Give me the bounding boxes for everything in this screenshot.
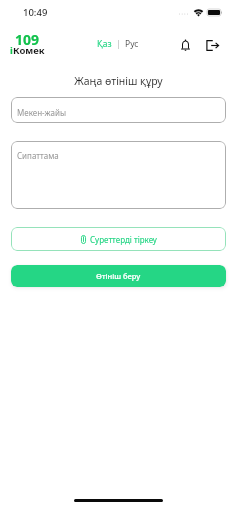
staticText: Мекен-жайы <box>17 107 66 118</box>
staticText: Өтініш беру <box>96 271 141 281</box>
button[interactable]: Өтініш беру <box>11 265 226 287</box>
staticText: Суреттерді тіркеу <box>90 234 157 245</box>
staticText: Рус <box>125 38 139 50</box>
staticText: 10:49 <box>23 6 48 19</box>
button[interactable]: Суреттерді тіркеу <box>11 227 226 251</box>
button[interactable]: Мекен-жайы <box>11 97 226 123</box>
button[interactable]: Log out <box>205 39 219 51</box>
staticText: Сипаттама <box>17 150 59 161</box>
button[interactable]: Сипаттама <box>11 141 226 209</box>
button[interactable]: Notifications <box>180 39 191 51</box>
staticText: Қаз <box>97 38 112 50</box>
button[interactable]: Рус <box>125 38 139 50</box>
button[interactable]: Қаз <box>97 38 112 50</box>
staticText: | <box>116 38 121 50</box>
staticText: Комек <box>13 44 45 57</box>
staticText: 109 <box>15 30 40 49</box>
staticText: Жаңа өтініш құру <box>0 74 237 88</box>
staticText: i <box>10 44 13 57</box>
